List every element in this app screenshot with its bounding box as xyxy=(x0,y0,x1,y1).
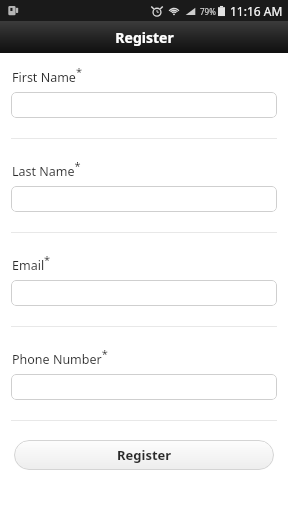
staticText: Register xyxy=(115,28,174,47)
staticText: Email* xyxy=(12,252,51,273)
button[interactable]: Email xyxy=(11,280,277,306)
staticText: 11:16 AM xyxy=(230,3,283,19)
staticText: First Name* xyxy=(12,64,82,85)
staticText: Phone Number* xyxy=(12,346,108,367)
staticText: Register xyxy=(117,446,172,464)
button[interactable]: Last Name xyxy=(11,186,277,212)
button[interactable]: First Name xyxy=(11,92,277,118)
staticText: Last Name* xyxy=(12,158,81,179)
button[interactable]: Register xyxy=(14,440,274,470)
button[interactable]: Phone Number xyxy=(11,374,277,400)
staticText: 79% xyxy=(200,6,216,17)
